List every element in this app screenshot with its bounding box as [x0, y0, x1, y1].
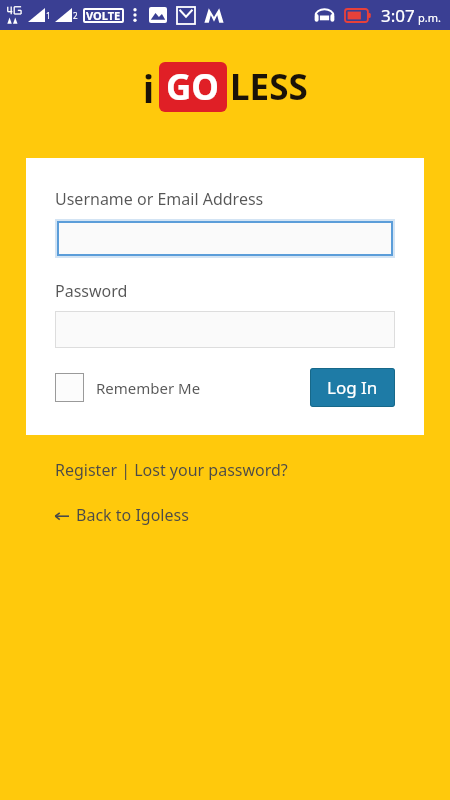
staticText: Username or Email Address [55, 188, 264, 210]
button[interactable]: Username or Email Address field [57, 221, 393, 256]
staticText: i [143, 63, 155, 113]
staticText: 1 [46, 10, 51, 21]
staticText: Back to Igoless [76, 504, 189, 526]
button[interactable]: Back to Igoless [55, 504, 189, 526]
staticText: Password [55, 280, 128, 302]
staticText: p.m. [418, 10, 441, 25]
button[interactable]: Remember Me [55, 373, 201, 402]
button[interactable]: Password field [55, 311, 395, 348]
button[interactable]: Register | Lost your password? [55, 459, 288, 481]
staticText: Register | Lost your password? [55, 459, 288, 481]
staticText: Log In [327, 376, 378, 399]
staticText: 2 [73, 10, 78, 21]
button[interactable]: Log In [310, 368, 395, 407]
staticText: 3:07 [381, 4, 415, 27]
staticText: LESS [230, 63, 308, 111]
staticText: VOLTE [86, 8, 121, 23]
staticText: Remember Me [96, 378, 201, 398]
staticText: GO [166, 63, 220, 111]
